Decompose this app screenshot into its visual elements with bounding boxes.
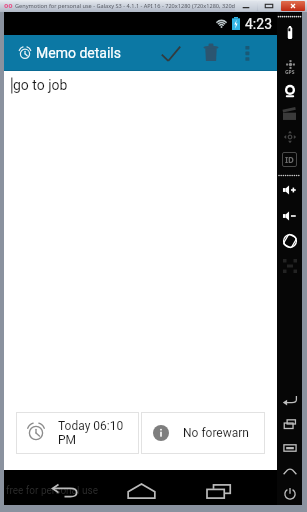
staticText: Memo details xyxy=(36,45,121,61)
staticText: free for personal use xyxy=(6,485,98,497)
button[interactable]: Home xyxy=(113,470,169,505)
staticText: GPS xyxy=(285,69,295,76)
staticText: Today 06:10 PM xyxy=(58,419,135,447)
staticText: ID xyxy=(285,154,294,165)
button[interactable] xyxy=(258,1,280,11)
button[interactable]: More options xyxy=(231,35,263,71)
button[interactable]: Today 06:10 PM xyxy=(16,412,139,454)
button[interactable] xyxy=(235,1,257,11)
staticText: No forewarn xyxy=(183,426,249,440)
button[interactable]: Back xyxy=(36,470,92,505)
button[interactable]: Recents xyxy=(190,470,246,505)
button[interactable]: Memo details xyxy=(4,35,121,71)
button[interactable]: No forewarn xyxy=(141,412,265,454)
button[interactable]: Save xyxy=(151,35,191,71)
staticText: Genymotion for personal use - Galaxy S3 … xyxy=(15,2,245,10)
button[interactable]: Close xyxy=(281,1,305,11)
button[interactable]: Delete xyxy=(191,35,231,71)
staticText: 4:23 xyxy=(245,16,272,32)
staticText: go to job xyxy=(13,77,68,93)
staticText: oo xyxy=(4,1,13,11)
